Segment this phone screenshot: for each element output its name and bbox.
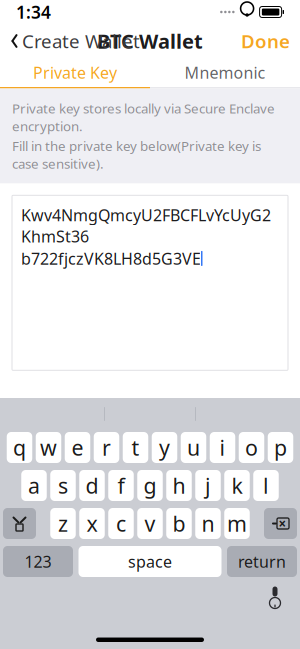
staticText: a	[28, 471, 40, 500]
button[interactable]: h	[166, 470, 192, 501]
staticText: v	[144, 509, 155, 538]
staticText: w	[40, 433, 57, 462]
button[interactable]: k	[224, 470, 250, 501]
staticText: r	[102, 433, 111, 462]
button[interactable]: f	[108, 470, 134, 501]
button[interactable]: Delete	[264, 508, 297, 539]
button[interactable]: e	[65, 432, 90, 463]
staticText: s	[58, 471, 68, 500]
staticText: BTC Wallet	[97, 28, 203, 54]
button[interactable]: z	[50, 508, 76, 539]
staticText: k	[231, 471, 242, 500]
staticText: j	[205, 471, 211, 500]
staticText: t	[131, 433, 139, 462]
staticText: e	[71, 433, 83, 462]
button[interactable]: x	[79, 508, 105, 539]
staticText: h	[172, 471, 185, 500]
button[interactable]: Done	[233, 23, 290, 59]
staticText: Fill in the private key below(Private ke…	[12, 137, 261, 172]
staticText: c	[116, 509, 126, 538]
staticText: l	[263, 471, 269, 500]
button[interactable]: return	[227, 546, 297, 577]
button[interactable]: j	[195, 470, 221, 501]
staticText: g	[143, 471, 156, 500]
button[interactable]: v	[137, 508, 163, 539]
staticText: return	[238, 551, 286, 572]
button[interactable]: t	[123, 432, 148, 463]
staticText: 123	[24, 551, 51, 572]
staticText: Create Wallet	[22, 29, 140, 53]
staticText: b	[172, 509, 185, 538]
staticText: d	[85, 471, 98, 500]
staticText: Private Key	[33, 62, 117, 83]
staticText: space	[128, 551, 172, 572]
button[interactable]: Dictation	[264, 585, 286, 609]
button[interactable]: b	[166, 508, 192, 539]
staticText: b722fjczVK8LH8d5G3VE	[21, 248, 201, 269]
button[interactable]: u	[181, 432, 206, 463]
staticText: n	[201, 509, 214, 538]
staticText: Private key stores locally via Secure En…	[12, 99, 275, 135]
button[interactable]: d	[79, 470, 105, 501]
button[interactable]: Mnemonic	[150, 58, 300, 87]
button[interactable]: r	[94, 432, 119, 463]
button[interactable]: g	[137, 470, 163, 501]
button[interactable]: a	[21, 470, 47, 501]
staticText: x	[86, 509, 97, 538]
staticText: m	[227, 509, 247, 538]
button[interactable]: y	[152, 432, 177, 463]
button[interactable]: m	[224, 508, 250, 539]
button[interactable]: n	[195, 508, 221, 539]
staticText: f	[117, 471, 124, 500]
button[interactable]: Create Wallet	[10, 23, 148, 59]
staticText: o	[245, 433, 258, 462]
staticText: ×	[278, 515, 286, 532]
staticText: 1:34	[16, 0, 51, 23]
staticText: Kwv4NmgQmcyU2FBCFLvYcUyG2KhmSt36	[21, 204, 271, 247]
staticText: Done	[241, 29, 290, 53]
button[interactable]: c	[108, 508, 134, 539]
button[interactable]: l	[253, 470, 279, 501]
button[interactable]: w	[36, 432, 61, 463]
button[interactable]: q	[7, 432, 32, 463]
staticText: p	[274, 433, 287, 462]
button[interactable]: Shift	[3, 508, 36, 539]
staticText: q	[13, 433, 26, 462]
button[interactable]: p	[268, 432, 293, 463]
staticText: z	[58, 509, 68, 538]
staticText: Mnemonic	[184, 62, 265, 83]
staticText: u	[187, 433, 200, 462]
button[interactable]: i	[210, 432, 235, 463]
button[interactable]: s	[50, 470, 76, 501]
button[interactable]: 123	[3, 546, 73, 577]
button[interactable]: Private Key	[0, 58, 150, 87]
button[interactable]: o	[239, 432, 264, 463]
staticText: i	[219, 433, 225, 462]
button[interactable]: space	[78, 546, 221, 577]
staticText: y	[159, 433, 170, 462]
